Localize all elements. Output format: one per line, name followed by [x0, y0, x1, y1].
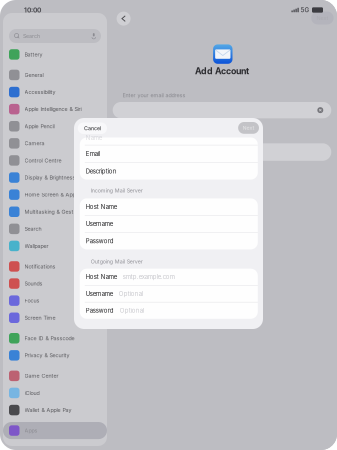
button[interactable]: Cancel — [78, 122, 107, 134]
button[interactable]: Back — [117, 12, 131, 26]
button[interactable]: Next — [238, 122, 259, 134]
button[interactable]: Battery — [3, 46, 107, 63]
staticText: Email — [86, 150, 100, 157]
staticText: Game Center — [24, 373, 58, 379]
staticText: Focus — [24, 297, 39, 304]
button[interactable]: Display & Brightness — [3, 169, 107, 186]
staticText: iCloud — [24, 390, 39, 396]
staticText: Battery — [24, 51, 42, 58]
button[interactable]: Home Screen & App — [3, 186, 107, 203]
staticText: 5G — [300, 6, 309, 14]
button[interactable]: Wallet & Apple Pay — [3, 401, 107, 419]
button[interactable]: Screen Time — [3, 309, 107, 326]
staticText: Add Account — [195, 66, 249, 76]
button[interactable]: Control Centre — [3, 152, 107, 169]
staticText: New Account — [151, 143, 185, 149]
staticText: Search — [23, 33, 40, 39]
button[interactable]: Apps — [3, 422, 107, 439]
button[interactable]: Focus — [3, 292, 107, 309]
button[interactable]: Accessibility — [3, 83, 107, 101]
staticText: Host Name — [86, 203, 117, 210]
button[interactable]: Multitasking & Gest — [3, 203, 107, 220]
staticText: Search — [24, 226, 41, 232]
staticText: Sounds — [24, 280, 42, 287]
staticText: Accessibility — [24, 89, 55, 95]
staticText: Cancel — [84, 125, 101, 131]
button[interactable]: Face ID & Passcode — [3, 330, 107, 347]
staticText: Host Name — [86, 273, 117, 280]
staticText: Multitasking & Gest — [24, 208, 73, 215]
staticText: 10:00 — [24, 6, 41, 14]
button[interactable]: Camera — [3, 135, 107, 152]
staticText: smtp.example.com — [123, 273, 175, 280]
staticText: Apple Intelligence & Siri — [24, 106, 81, 112]
button[interactable]: iCloud — [3, 384, 107, 401]
staticText: Username — [86, 220, 113, 228]
staticText: Control Centre — [24, 157, 61, 164]
button[interactable]: Next — [311, 11, 334, 24]
staticText: Camera — [24, 140, 44, 147]
staticText: Wallpaper — [24, 243, 48, 249]
button[interactable]: Notifications — [3, 258, 107, 275]
staticText: Apple Pencil — [24, 123, 54, 129]
staticText: Optional — [120, 307, 144, 314]
button[interactable]: Privacy & Security — [3, 347, 107, 364]
button[interactable]: Apple Pencil — [3, 118, 107, 135]
staticText: Face ID & Passcode — [24, 335, 74, 341]
staticText: Screen Time — [24, 314, 55, 321]
button[interactable]: Search — [3, 220, 107, 237]
staticText: Display & Brightness — [24, 174, 75, 181]
staticText: Password — [86, 237, 114, 245]
staticText: Apps — [24, 427, 37, 434]
staticText: Privacy & Security — [24, 352, 69, 359]
staticText: Password — [86, 307, 114, 314]
staticText: Incoming Mail Server — [91, 187, 143, 194]
staticText: Username — [86, 290, 113, 297]
staticText: Next — [242, 125, 254, 131]
staticText: Outgoing Mail Server — [91, 258, 143, 265]
staticText: Wallet & Apple Pay — [24, 407, 71, 413]
staticText: Enter your email address — [122, 92, 185, 99]
staticText: General — [24, 72, 43, 78]
staticText: Notifications — [24, 263, 55, 270]
staticText: Optional — [119, 290, 143, 297]
button[interactable]: Wallpaper — [3, 237, 107, 254]
staticText: Name — [86, 134, 102, 142]
button[interactable]: General — [3, 66, 107, 83]
staticText: Home Screen & App — [24, 191, 75, 198]
staticText: Description — [86, 168, 117, 175]
button[interactable]: Sounds — [3, 275, 107, 292]
button[interactable]: Game Center — [3, 367, 107, 384]
button[interactable]: Apple Intelligence & Siri — [3, 101, 107, 118]
